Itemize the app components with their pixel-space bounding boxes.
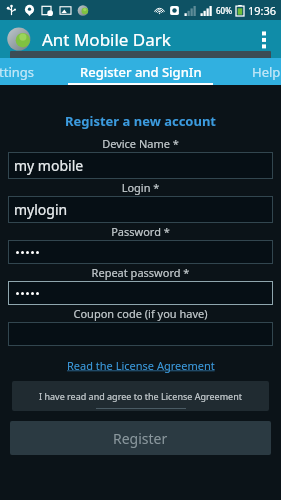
button[interactable]: ttings (0, 58, 60, 85)
staticText: Register a new account (0, 112, 281, 130)
staticText: Device Name * (0, 136, 281, 151)
staticText: Ant Mobile Dark (42, 28, 171, 51)
staticText: Coupon code (if you have) (0, 306, 281, 321)
staticText: Login (122, 59, 159, 78)
staticText: Register (113, 429, 168, 448)
staticText: mylogin (14, 200, 68, 219)
button[interactable]: I have read and agree to the License Agr… (12, 381, 269, 411)
staticText: I have read and agree to the License Agr… (39, 390, 242, 402)
staticText: 60% (216, 5, 232, 16)
button[interactable]: Help (235, 58, 281, 85)
staticText: Password * (0, 224, 281, 239)
button[interactable]: Login (10, 51, 271, 85)
staticText: Help (252, 63, 281, 81)
staticText: Login * (0, 180, 281, 195)
button[interactable] (8, 240, 273, 264)
button[interactable]: Read the License Agreement (65, 356, 217, 375)
staticText: my mobile (14, 156, 84, 175)
button[interactable]: mylogin (8, 196, 273, 223)
staticText: ttings (0, 63, 34, 81)
staticText: Register and SignIn (80, 63, 202, 81)
staticText: 19:36 (248, 3, 277, 18)
button[interactable] (8, 281, 273, 305)
button[interactable] (8, 322, 273, 346)
button[interactable]: Register (10, 421, 271, 455)
staticText: Repeat password * (0, 265, 281, 280)
button[interactable]: More options (247, 20, 281, 58)
button[interactable]: my mobile (8, 152, 273, 179)
button[interactable]: Register and SignIn (67, 58, 215, 85)
